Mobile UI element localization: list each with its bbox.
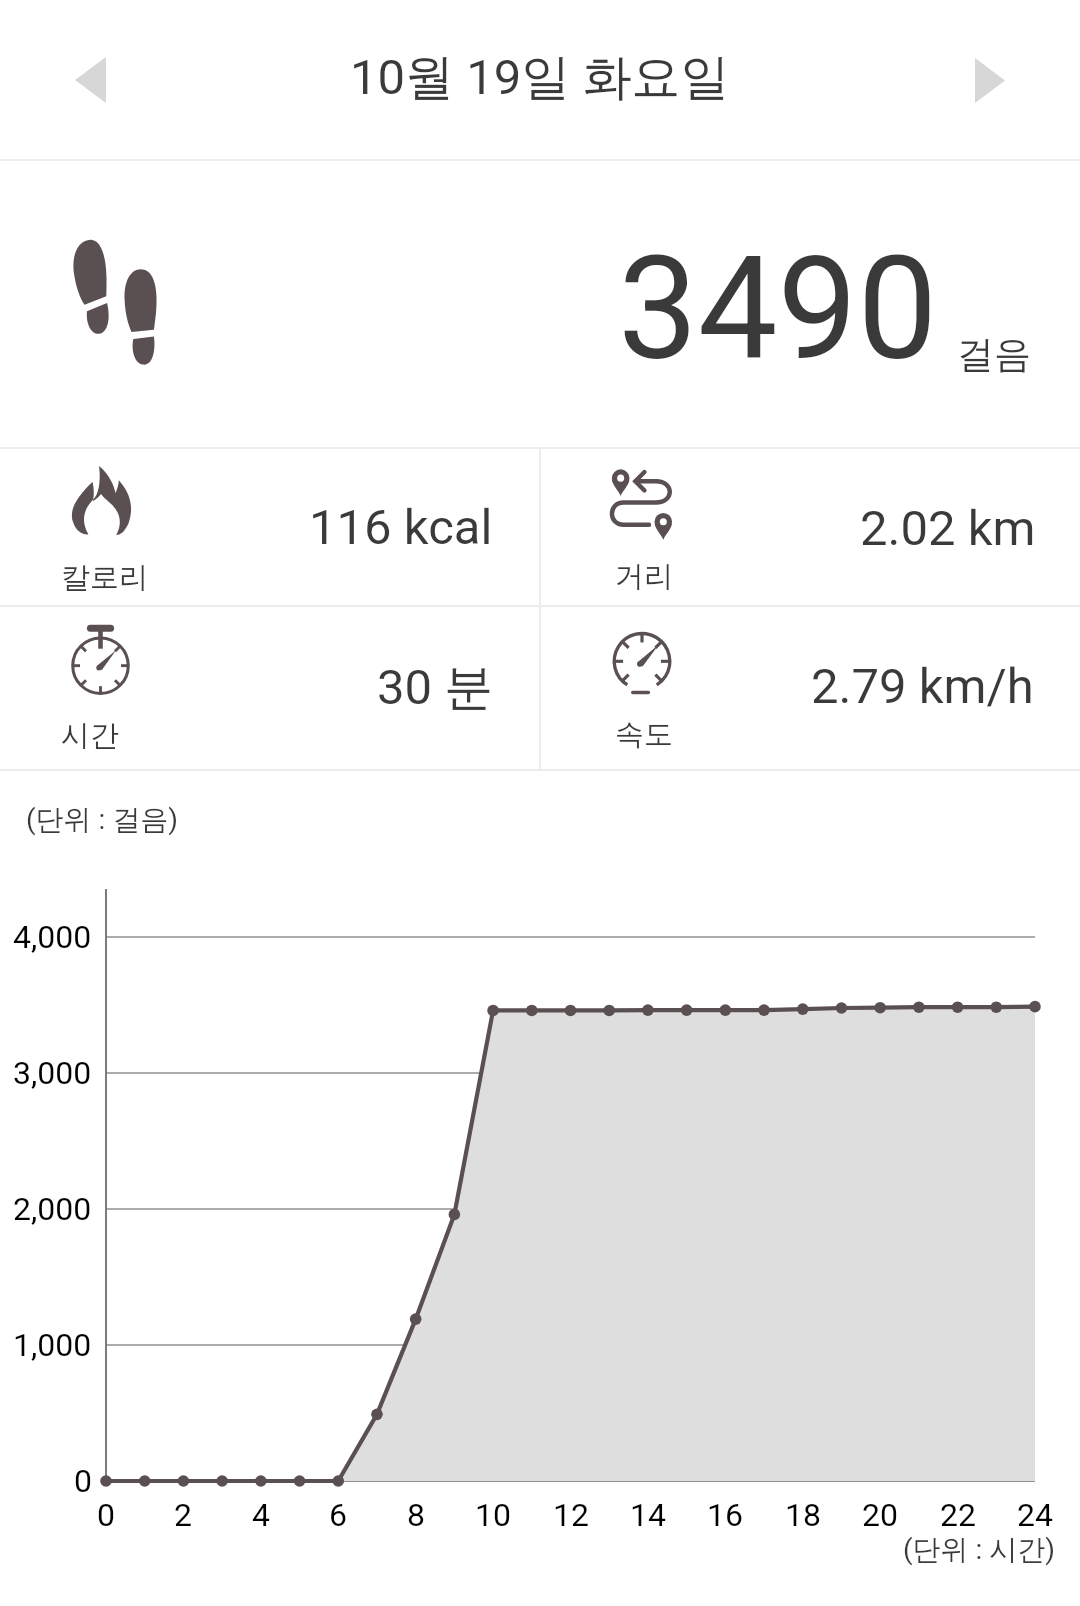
staticText: 24 xyxy=(1017,1496,1053,1534)
staticText: 16 xyxy=(707,1496,743,1534)
staticText: 14 xyxy=(630,1496,666,1534)
staticText: 12 xyxy=(553,1496,589,1534)
staticText: 3490 xyxy=(618,226,938,392)
staticText: 30 분 xyxy=(377,657,494,719)
staticText: 걸음 xyxy=(957,331,1031,378)
button[interactable]: 속도 xyxy=(541,607,1080,769)
staticText: 18 xyxy=(785,1496,821,1534)
staticText: 칼로리 xyxy=(61,559,148,596)
button[interactable]: Previous day xyxy=(48,38,132,122)
staticText: 속도 xyxy=(615,716,673,753)
staticText: 2 xyxy=(174,1496,192,1534)
staticText: 20 xyxy=(862,1496,898,1534)
staticText: (단위 : 시간) xyxy=(903,1532,1056,1567)
staticText: 6 xyxy=(329,1496,347,1534)
staticText: 4 xyxy=(252,1496,270,1534)
button[interactable]: 칼로리 xyxy=(0,449,539,605)
staticText: 4,000 xyxy=(13,918,92,956)
staticText: 8 xyxy=(407,1496,425,1534)
staticText: 0 xyxy=(74,1462,92,1500)
staticText: 10월 19일 화요일 xyxy=(350,47,730,109)
staticText: 22 xyxy=(940,1496,976,1534)
staticText: (단위 : 걸음) xyxy=(26,802,179,837)
staticText: 거리 xyxy=(615,558,673,595)
button[interactable]: Next day xyxy=(948,38,1032,122)
staticText: 2,000 xyxy=(13,1190,92,1228)
staticText: 2.02 km xyxy=(860,500,1036,557)
button[interactable]: 3490 xyxy=(0,161,1080,447)
button[interactable]: 거리 xyxy=(541,449,1080,605)
staticText: 시간 xyxy=(61,717,119,754)
staticText: 0 xyxy=(97,1496,115,1534)
button[interactable]: 시간 xyxy=(0,607,539,769)
staticText: 1,000 xyxy=(13,1326,92,1364)
staticText: 3,000 xyxy=(13,1054,92,1092)
staticText: 116 kcal xyxy=(309,499,493,556)
staticText: 10 xyxy=(475,1496,511,1534)
staticText: 2.79 km/h xyxy=(811,658,1034,715)
